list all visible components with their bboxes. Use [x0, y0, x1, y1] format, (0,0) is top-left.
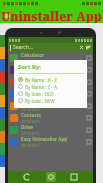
button[interactable]: Uninstall — [46, 172, 56, 182]
staticText: By date : OLD — [25, 91, 54, 97]
staticText: Clock — [21, 88, 34, 94]
button[interactable]: Select Contacts — [87, 116, 91, 120]
button[interactable]: Select Chrome — [87, 80, 91, 84]
button[interactable]: Search... — [10, 43, 91, 52]
button[interactable]: Select all — [69, 172, 79, 182]
staticText: 20/10/2015 — [21, 83, 40, 88]
button[interactable]: Menu — [2, 14, 10, 18]
button[interactable]: Easy Uninstaller App — [10, 136, 91, 148]
staticText: Contacts — [21, 112, 41, 118]
button[interactable]: Contacts — [10, 112, 91, 124]
staticText: Sort By: — [18, 63, 42, 71]
button[interactable]: Chrome — [10, 76, 91, 88]
staticText: 20/10/2015 — [21, 71, 40, 76]
button[interactable]: Calculator — [10, 52, 91, 64]
button[interactable]: Select Drive — [87, 128, 91, 132]
staticText: Contacts — [21, 100, 41, 106]
button[interactable]: Select Contacts — [87, 104, 91, 108]
staticText: 20/10/2015 — [21, 107, 40, 112]
button[interactable]: By Name : A - Z — [18, 76, 84, 83]
button[interactable]: Select Camera — [87, 68, 91, 72]
button[interactable]: Drive — [10, 124, 91, 136]
button[interactable]: Refresh — [22, 172, 32, 182]
staticText: 20/10/2015 — [21, 59, 40, 64]
button[interactable]: Select Clock — [87, 92, 91, 96]
button[interactable]: Sort — [86, 45, 91, 50]
staticText: Camera — [21, 64, 39, 70]
staticText: Calculator — [21, 52, 44, 58]
staticText: By Name : A - Z — [25, 77, 57, 83]
staticText: By date : NEW — [25, 98, 55, 104]
staticText: By Name : Z - A — [25, 84, 57, 90]
staticText: 20/10/2015 — [21, 95, 40, 100]
staticText: 20/10/2015 — [21, 119, 40, 124]
button[interactable]: By date : OLD — [18, 90, 84, 97]
staticText: Uninstaller App — [1, 8, 102, 23]
staticText: Drive — [21, 124, 33, 130]
staticText: Easy Uninstaller App — [21, 136, 68, 142]
button[interactable]: Camera — [10, 64, 91, 76]
staticText: 20/10/2015 — [21, 143, 40, 148]
button[interactable]: Select Calculator — [87, 56, 91, 60]
button[interactable]: Clock — [10, 88, 91, 100]
button[interactable]: Select Easy Uninstaller App — [87, 140, 91, 144]
button[interactable]: By date : NEW — [18, 97, 84, 104]
staticText: Search... — [13, 44, 33, 51]
button[interactable]: By Name : Z - A — [18, 83, 84, 90]
button[interactable]: Contacts — [10, 100, 91, 112]
button[interactable]: More options — [98, 12, 101, 20]
staticText: Chrome — [21, 76, 39, 82]
staticText: 20/10/2015 — [21, 131, 40, 136]
